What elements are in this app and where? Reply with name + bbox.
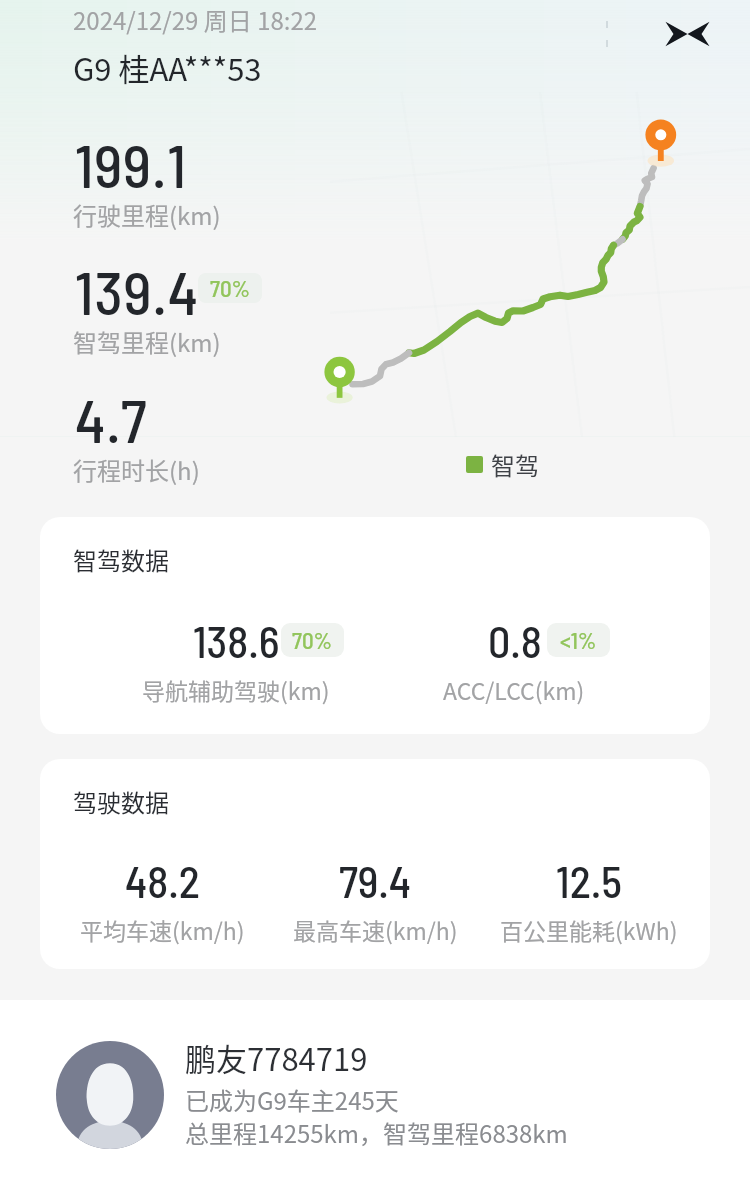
staticText: 70% [292,626,333,654]
staticText: 百公里能耗(kWh) [500,913,678,946]
staticText: 12.5 [556,854,622,907]
staticText: 48.2 [125,854,200,907]
staticText: 智驾 [491,447,539,482]
staticText: 驾驶数据 [73,784,169,819]
staticText: 139.4 [75,255,200,327]
staticText: 199.1 [75,128,187,200]
staticText: 平均车速(km/h) [80,913,245,946]
staticText: 总里程14255km，智驾里程6838km [185,1115,568,1150]
staticText: <1% [560,626,597,654]
staticText: 行驶里程(km) [73,197,221,232]
staticText: 0.8 [488,614,542,667]
staticText: 4.7 [75,383,148,455]
staticText: 79.4 [339,854,412,907]
staticText: ACC/LCC(km) [443,673,585,706]
staticText: 行程时长(h) [73,452,200,487]
button[interactable]: 智驾数据 [40,517,710,734]
staticText: 70% [210,274,251,302]
staticText: 2024/12/29 周日 18:22 [73,2,318,37]
button[interactable]: XPeng logo [660,16,715,52]
staticText: G9 桂AA***53 [73,45,262,90]
button[interactable]: 驾驶数据 [40,759,710,969]
staticText: 导航辅助驾驶(km) [142,673,330,706]
staticText: 智驾数据 [73,542,169,577]
staticText: 已成为G9车主245天 [185,1082,399,1117]
staticText: 138.6 [193,614,280,667]
staticText: 最高车速(km/h) [293,913,458,946]
staticText: 智驾里程(km) [73,324,221,359]
staticText: 鹏友7784719 [185,1035,368,1080]
button[interactable]: 鹏友7784719 [0,1020,750,1170]
